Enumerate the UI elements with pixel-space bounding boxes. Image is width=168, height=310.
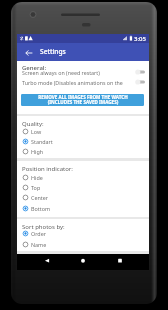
button[interactable]: High [17,146,149,156]
staticText: Turbo mode (Disables animations on the w… [22,79,135,86]
staticText: Name [31,241,47,248]
staticText: High [31,148,44,155]
button[interactable]: Recent apps [113,254,127,268]
staticText: Position indicator: [22,165,73,173]
staticText: Screen always on (need restart) [22,69,135,76]
button[interactable]: Back [40,254,54,268]
button[interactable]: Standart [17,136,149,146]
staticText: 3:05 [134,35,146,43]
staticText: Hide [31,174,43,181]
staticText: Low [31,128,42,135]
button[interactable]: Screen always on (need restart) [17,67,149,77]
staticText: Standart [31,138,53,145]
button[interactable]: Home [76,254,90,268]
staticText: Quality: [22,120,44,128]
staticText: Order [31,230,46,237]
button[interactable]: Bottom [17,203,149,213]
staticText: Top [31,184,41,191]
staticText: REMOVE ALL IMAGES FROM THE WATCH (INCLUD… [38,94,128,106]
button[interactable]: Name [17,239,149,249]
button[interactable]: Hide [17,172,149,182]
button[interactable]: Back [22,46,35,59]
button[interactable]: Order [17,228,149,238]
button[interactable]: REMOVE ALL IMAGES FROM THE WATCH (INCLUD… [21,94,144,106]
button[interactable]: Low [17,126,149,136]
button[interactable]: Top [17,182,149,192]
button[interactable]: Center [17,192,149,202]
button[interactable]: Turbo mode (Disables animations on the w… [17,77,149,87]
staticText: General: [22,64,47,72]
staticText: Sort photos by: [22,223,65,231]
staticText: Bottom [31,205,50,212]
staticText: Center [31,194,48,201]
staticText: Settings [40,47,66,56]
